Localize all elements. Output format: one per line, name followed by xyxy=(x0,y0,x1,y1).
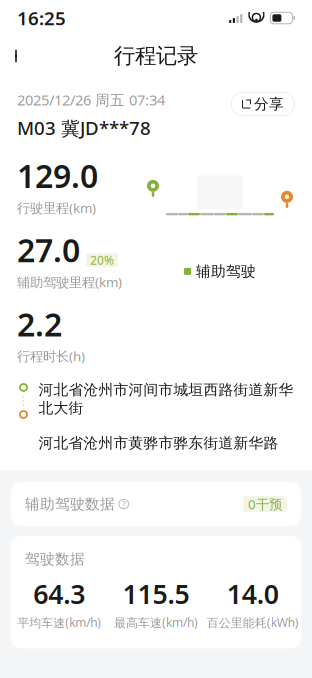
staticText: 辅助驾驶 xyxy=(196,262,256,280)
staticText: 115.5 xyxy=(122,576,189,611)
staticText: 河北省沧州市黄骅市骅东街道新华路 xyxy=(38,434,278,452)
staticText: 行程时长(h) xyxy=(17,347,85,365)
staticText: 0干预 xyxy=(248,495,282,513)
staticText: 行程记录 xyxy=(114,43,198,69)
staticText: 辅助驾驶里程(km) xyxy=(17,273,122,291)
staticText: 2025/12/26 周五 07:34 xyxy=(17,90,165,109)
staticText: 16:25 xyxy=(17,6,66,30)
staticText: 平均车速(km/h) xyxy=(17,614,101,630)
staticText: 分享 xyxy=(254,95,284,113)
staticText: 20% xyxy=(90,252,114,268)
staticText: M03 冀JD***78 xyxy=(17,115,151,140)
staticText: 64.3 xyxy=(33,576,85,611)
staticText: 行驶里程(km) xyxy=(17,199,96,217)
staticText: 2.2 xyxy=(17,303,62,345)
staticText: 最高车速(km/h) xyxy=(114,614,198,630)
staticText: 27.0 xyxy=(17,229,80,271)
staticText: 驾驶数据 xyxy=(25,550,85,568)
button[interactable]: 分享 xyxy=(231,92,295,116)
button[interactable]: 返回 xyxy=(0,36,37,76)
staticText: 129.0 xyxy=(17,154,98,197)
staticText: 辅助驾驶数据 xyxy=(25,495,115,513)
staticText: 14.0 xyxy=(227,576,279,611)
staticText: 百公里能耗(kWh) xyxy=(207,614,299,630)
button[interactable]: 辅助驾驶数据 xyxy=(11,482,301,526)
staticText: 河北省沧州市河间市城垣西路街道新华北大街 xyxy=(38,381,293,417)
staticText: ? xyxy=(122,498,126,510)
